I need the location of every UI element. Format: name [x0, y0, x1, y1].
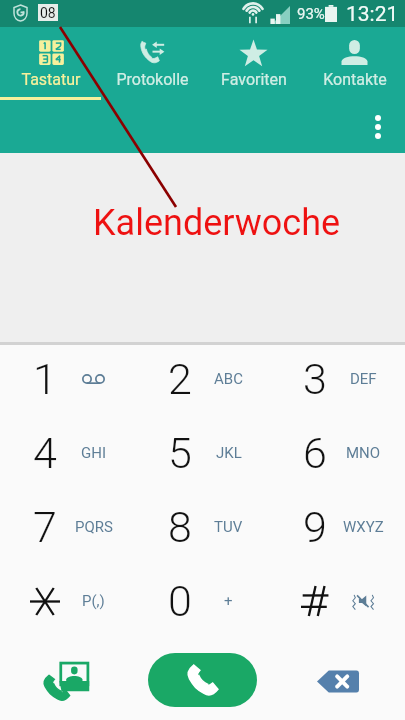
staticText: 5: [168, 428, 192, 478]
staticText: 08: [40, 5, 56, 21]
button[interactable]: 1: [0, 342, 135, 416]
staticText: MNO: [346, 444, 381, 462]
staticText: 6: [303, 428, 327, 478]
button[interactable]: 0: [135, 564, 270, 638]
button[interactable]: Protokolle: [102, 27, 203, 127]
staticText: Protokolle: [116, 70, 189, 89]
staticText: +: [224, 592, 233, 610]
staticText: GHI: [81, 444, 106, 462]
button[interactable]: 2: [135, 342, 270, 416]
staticText: DEF: [350, 370, 377, 388]
button[interactable]: 8: [135, 490, 270, 564]
staticText: 13:21: [346, 2, 399, 27]
staticText: JKL: [216, 444, 242, 462]
staticText: 93%: [297, 5, 325, 23]
button[interactable]: 3: [270, 342, 405, 416]
button[interactable]: Videoanruf: [38, 653, 96, 709]
staticText: 1: [33, 354, 57, 404]
button[interactable]: Kontakte: [304, 27, 405, 127]
button[interactable]: 7: [0, 490, 135, 564]
button[interactable]: Anrufen: [148, 653, 257, 707]
staticText: 2: [168, 354, 192, 404]
staticText: P(,): [82, 592, 105, 610]
button[interactable]: [270, 564, 405, 638]
button[interactable]: 4: [0, 416, 135, 490]
button[interactable]: 9: [270, 490, 405, 564]
staticText: Tastatur: [21, 70, 81, 89]
staticText: PQRS: [75, 518, 113, 536]
staticText: WXYZ: [343, 518, 384, 536]
staticText: 7: [33, 502, 57, 552]
staticText: ABC: [214, 370, 243, 388]
staticText: TUV: [214, 518, 243, 536]
staticText: 4: [33, 428, 57, 478]
button[interactable]: Tastatur: [0, 27, 102, 127]
button[interactable]: Favoriten: [203, 27, 304, 127]
button[interactable]: Löschen: [309, 653, 367, 709]
staticText: 0: [168, 576, 192, 626]
staticText: Kontakte: [323, 70, 387, 89]
button[interactable]: 6: [270, 416, 405, 490]
button[interactable]: P(,): [0, 564, 135, 638]
staticText: 3: [303, 354, 327, 404]
button[interactable]: Mehr Optionen: [356, 105, 400, 149]
staticText: 8: [168, 502, 192, 552]
staticText: Favoriten: [221, 70, 287, 89]
staticText: Kalenderwoche: [93, 202, 341, 244]
button[interactable]: 5: [135, 416, 270, 490]
staticText: 9: [303, 502, 327, 552]
